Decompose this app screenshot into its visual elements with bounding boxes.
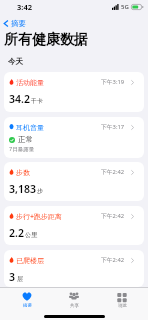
staticText: 步行+跑步距离 [16,212,63,220]
staticText: 步 [37,187,43,195]
button[interactable]: 步行+跑步距离 [4,206,144,245]
staticText: 下午2:42 [101,168,125,176]
staticText: 共享 [70,303,79,309]
button[interactable]: Summary [6,291,48,310]
staticText: 层 [17,275,23,283]
staticText: 2.2 [9,226,24,240]
staticText: 5G [121,3,129,11]
staticText: 3,183 [9,182,36,196]
staticText: 下午3:17 [101,123,125,131]
staticText: 摘要 [23,303,32,309]
staticText: 34.2 [9,92,30,106]
staticText: 千卡 [31,97,43,105]
staticText: 下午3:19 [101,78,125,86]
staticText: 正常 [18,135,33,144]
button[interactable]: 摘要 [0,15,30,31]
staticText: 7日暴露量 [9,145,35,153]
staticText: 公里 [25,231,37,239]
staticText: 今天 [8,57,23,66]
staticText: 活动能量 [16,78,44,86]
staticText: 下午2:42 [101,256,125,264]
staticText: 已爬楼层 [16,256,44,264]
button[interactable]: 活动能量 [4,72,144,112]
staticText: 浏览 [118,303,127,309]
button[interactable]: 已爬楼层 [4,250,144,287]
staticText: 所有健康数据 [4,31,88,49]
staticText: 摘要 [11,19,26,28]
staticText: 耳机音量 [16,123,44,131]
staticText: 步数 [16,168,30,176]
staticText: 3 [9,270,16,284]
button[interactable]: Browse [101,291,143,310]
button[interactable]: 耳机音量 [4,117,144,158]
button[interactable]: 步数 [4,162,144,201]
staticText: 3:42 [17,2,32,12]
button[interactable]: Sharing [53,291,95,310]
staticText: 下午2:42 [101,212,125,220]
